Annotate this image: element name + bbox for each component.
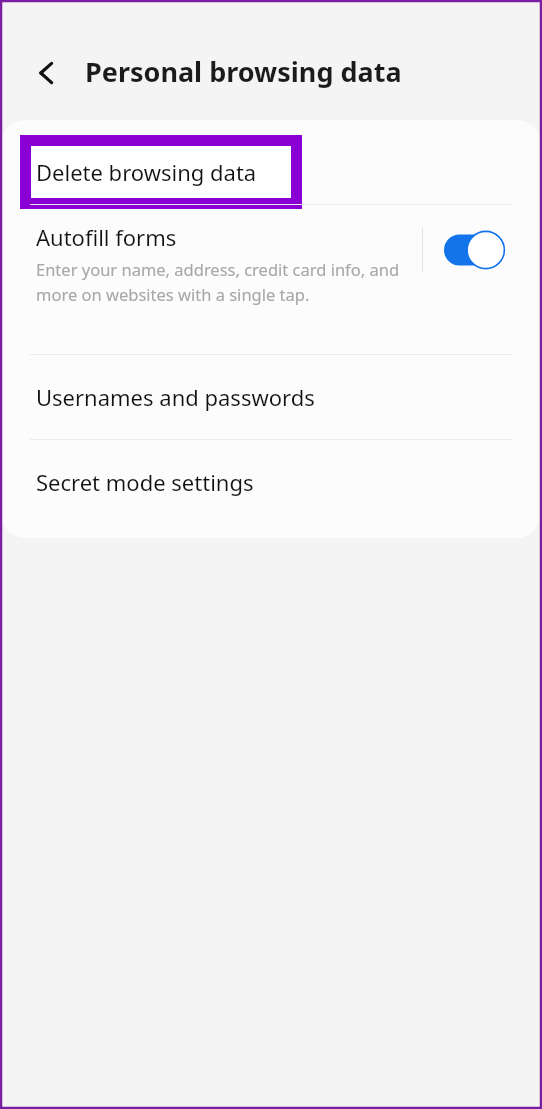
button[interactable]: Back	[22, 47, 74, 99]
staticText: Secret mode settings	[36, 467, 254, 497]
button[interactable]: Autofill forms toggle	[444, 231, 506, 269]
button[interactable]: Usernames and passwords	[0, 355, 542, 439]
staticText: Delete browsing data	[36, 157, 257, 187]
button[interactable]: Delete browsing data	[0, 120, 542, 204]
staticText: Usernames and passwords	[36, 382, 315, 412]
staticText: Personal browsing data	[85, 53, 402, 90]
button[interactable]: Secret mode settings	[0, 440, 542, 524]
staticText: Autofill forms	[36, 222, 177, 252]
button[interactable]: Autofill forms	[0, 205, 542, 354]
staticText: Enter your name, address, credit card in…	[36, 258, 410, 305]
